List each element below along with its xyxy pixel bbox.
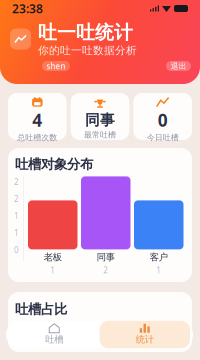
staticText: 2 [103, 265, 108, 275]
staticText: 退出 [170, 61, 186, 71]
staticText: 吐槽占比 [15, 301, 67, 317]
staticText: 0 [158, 109, 168, 132]
staticText: 客户 [150, 251, 168, 263]
staticText: 老板 [44, 251, 62, 263]
button[interactable]: 统计 [99, 321, 190, 348]
staticText: 最常吐槽 [84, 130, 116, 140]
staticText: 吐槽对象分布 [15, 156, 93, 172]
staticText: 2 [14, 177, 19, 187]
staticText: 4 [32, 109, 42, 132]
staticText: shen [46, 61, 65, 71]
staticText: 总吐槽次数 [17, 133, 57, 142]
staticText: 23:38 [12, 0, 43, 16]
button[interactable]: 吐槽 [9, 321, 99, 348]
staticText: 1 [14, 228, 19, 238]
staticText: 吐槽 [45, 334, 63, 345]
staticText: 吐一吐统计 [38, 21, 133, 44]
staticText: 今日吐槽 [147, 133, 179, 142]
staticText: 1 [50, 265, 55, 275]
staticText: 你的吐一吐数据分析 [38, 44, 137, 57]
staticText: 1 [14, 211, 19, 221]
staticText: 2 [14, 194, 19, 204]
staticText: 统计 [136, 334, 154, 345]
staticText: 0 [14, 245, 19, 255]
button[interactable]: 退出 [166, 61, 191, 71]
staticText: 同事 [85, 111, 115, 129]
staticText: 1 [156, 265, 161, 275]
staticText: 同事 [97, 251, 115, 263]
